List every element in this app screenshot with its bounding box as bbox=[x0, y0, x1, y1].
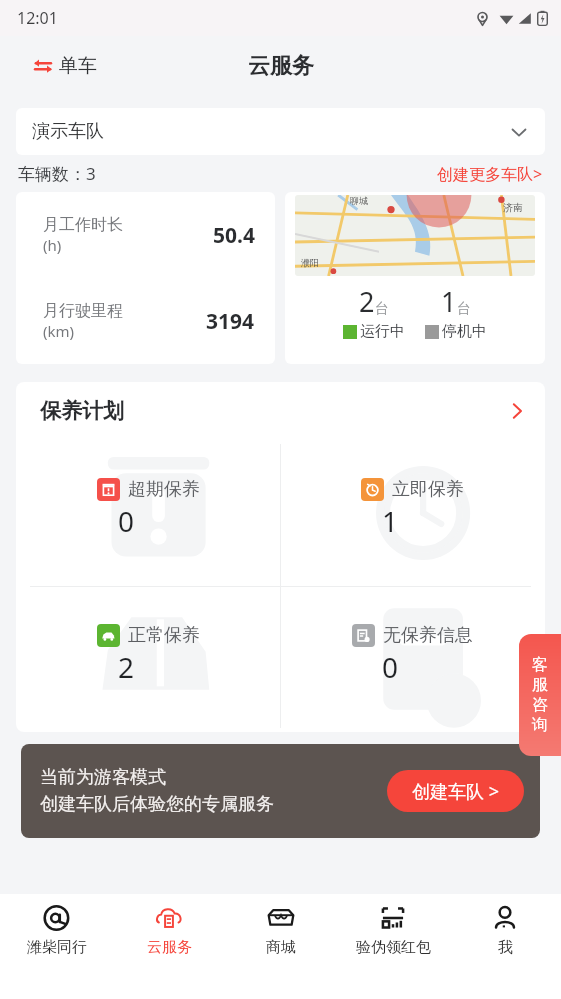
staticText: 正常保养 bbox=[128, 624, 200, 647]
button[interactable]: 单车 bbox=[33, 54, 97, 78]
staticText: 创建车队 > bbox=[412, 779, 499, 804]
staticText: 询 bbox=[532, 715, 548, 735]
staticText: 咨 bbox=[532, 695, 548, 715]
button[interactable]: 客 bbox=[519, 634, 561, 756]
staticText: 验伪领红包 bbox=[356, 938, 431, 957]
staticText: 运行中 bbox=[360, 322, 405, 341]
staticText: 济南 bbox=[503, 201, 523, 214]
staticText: 聊城 bbox=[350, 195, 368, 206]
staticText: 创建车队后体验您的专属服务 bbox=[40, 793, 274, 816]
staticText: 台 bbox=[457, 300, 471, 318]
staticText: 月工作时长 bbox=[43, 215, 123, 235]
button[interactable]: 超期保养 bbox=[16, 440, 280, 586]
staticText: 月行驶里程 bbox=[43, 301, 123, 321]
staticText: 停机中 bbox=[442, 322, 487, 341]
button[interactable]: 潍柴同行 bbox=[0, 904, 113, 999]
button[interactable]: 创建车队 > bbox=[387, 770, 524, 812]
button[interactable]: 立即保养 bbox=[280, 440, 545, 586]
staticText: 台 bbox=[375, 300, 389, 318]
staticText: 客 bbox=[532, 655, 548, 675]
staticText: 超期保养 bbox=[128, 478, 200, 501]
button[interactable]: 正常保养 bbox=[16, 586, 280, 732]
staticText: (h) bbox=[43, 235, 62, 255]
staticText: 3194 bbox=[206, 307, 255, 336]
staticText: 50.4 bbox=[213, 221, 255, 250]
staticText: 云服务 bbox=[248, 52, 314, 80]
staticText: 创建更多车队> bbox=[437, 163, 543, 185]
staticText: 2 bbox=[118, 648, 135, 686]
button[interactable]: 验伪领红包 bbox=[337, 904, 449, 999]
button[interactable]: 商城 bbox=[225, 904, 337, 999]
button[interactable]: 月工作时长 bbox=[16, 192, 275, 364]
staticText: 服 bbox=[532, 675, 548, 695]
staticText: 1 bbox=[382, 502, 399, 540]
staticText: 0 bbox=[118, 502, 135, 540]
staticText: 云服务 bbox=[147, 938, 192, 957]
staticText: 商城 bbox=[266, 938, 296, 957]
staticText: 我 bbox=[498, 938, 513, 957]
staticText: 12:01 bbox=[17, 7, 58, 29]
staticText: (km) bbox=[43, 321, 75, 341]
staticText: 保养计划 bbox=[40, 398, 124, 424]
other: 查看保养计划 bbox=[507, 401, 527, 421]
button[interactable]: 云服务 bbox=[113, 904, 225, 999]
button[interactable]: 创建更多车队> bbox=[437, 163, 543, 185]
staticText: 当前为游客模式 bbox=[40, 766, 166, 789]
staticText: 无保养信息 bbox=[383, 624, 473, 647]
button[interactable]: 演示车队 bbox=[16, 108, 545, 155]
staticText: 演示车队 bbox=[32, 120, 104, 143]
staticText: 0 bbox=[382, 648, 399, 686]
staticText: 2 bbox=[359, 283, 375, 320]
staticText: 潍柴同行 bbox=[27, 938, 87, 957]
button[interactable]: 我 bbox=[449, 904, 561, 999]
staticText: 1 bbox=[441, 283, 457, 320]
button[interactable]: 无保养信息 bbox=[280, 586, 545, 732]
staticText: 立即保养 bbox=[392, 478, 464, 501]
staticText: 车辆数：3 bbox=[18, 162, 96, 185]
staticText: 单车 bbox=[59, 54, 97, 78]
button[interactable]: 聊城 bbox=[285, 192, 545, 364]
staticText: 濮阳 bbox=[301, 257, 319, 268]
button[interactable]: 保养计划 bbox=[16, 382, 545, 440]
